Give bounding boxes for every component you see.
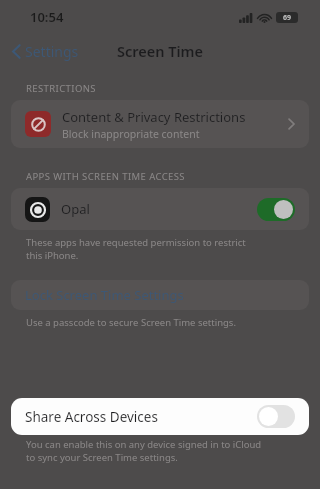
button[interactable]: Content & Privacy Restrictions: [11, 100, 309, 148]
staticText: APPS WITH SCREEN TIME ACCESS: [26, 170, 185, 183]
button[interactable]: Toggle on: [257, 198, 295, 221]
button[interactable]: Share Across Devices: [11, 398, 309, 435]
staticText: Use a passcode to secure Screen Time set…: [26, 316, 236, 329]
staticText: Lock Screen Time Settings: [25, 286, 184, 304]
staticText: Screen Time: [117, 41, 203, 61]
staticText: Settings: [25, 42, 79, 61]
staticText: 10:54: [30, 8, 64, 26]
staticText: You can enable this on any device signed…: [26, 438, 262, 464]
button[interactable]: Toggle off: [257, 405, 295, 428]
staticText: Share Across Devices: [25, 408, 158, 426]
staticText: Opal: [61, 200, 257, 218]
staticText: Block inappropriate content: [62, 127, 200, 141]
staticText: RESTRICTIONS: [26, 82, 96, 95]
button[interactable]: Lock Screen Time Settings: [11, 280, 309, 310]
staticText: 69: [283, 13, 292, 23]
staticText: These apps have requested permission to …: [26, 236, 246, 262]
button[interactable]: Settings: [8, 38, 83, 65]
staticText: Content & Privacy Restrictions: [62, 108, 246, 126]
button[interactable]: Opal: [11, 188, 309, 230]
